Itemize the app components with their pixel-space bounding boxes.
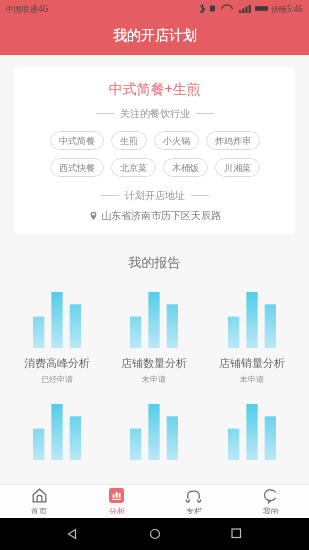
button[interactable]: 小火锅 bbox=[154, 131, 199, 150]
staticText: 我的报告 bbox=[0, 254, 309, 270]
button[interactable] bbox=[33, 404, 81, 460]
staticText: 生煎 bbox=[120, 135, 138, 146]
button[interactable]: Recents bbox=[226, 523, 248, 545]
button[interactable]: 消费高峰分析 bbox=[8, 292, 105, 384]
staticText: 中式简餐+生煎 bbox=[108, 79, 201, 98]
staticText: 中国联通4G bbox=[6, 3, 49, 14]
button[interactable]: 分析 bbox=[78, 484, 155, 518]
button[interactable]: 中式简餐 bbox=[50, 131, 104, 150]
staticText: 店铺数量分析 bbox=[121, 356, 187, 370]
button[interactable]: Back bbox=[61, 523, 83, 545]
button[interactable]: Home bbox=[144, 523, 166, 545]
staticText: 西式快餐 bbox=[59, 162, 95, 173]
button[interactable]: 川湘菜 bbox=[215, 158, 260, 177]
button[interactable]: 首页 bbox=[0, 484, 78, 518]
staticText: 我的开店计划 bbox=[113, 27, 197, 45]
button[interactable]: 西式快餐 bbox=[50, 158, 104, 177]
staticText: 小火锅 bbox=[163, 135, 190, 146]
staticText: 未申请 bbox=[142, 374, 166, 384]
other: 首页 bbox=[32, 488, 47, 503]
button[interactable]: 店铺数量分析 bbox=[105, 292, 203, 384]
staticText: 首页 bbox=[31, 506, 47, 514]
staticText: 川湘菜 bbox=[224, 162, 251, 173]
button[interactable] bbox=[228, 404, 276, 460]
button[interactable]: 生煎 bbox=[111, 131, 147, 150]
other: 我的 bbox=[263, 488, 278, 503]
button[interactable]: 北京菜 bbox=[111, 158, 156, 177]
button[interactable]: 木桶饭 bbox=[163, 158, 208, 177]
staticText: 已经申请 bbox=[41, 374, 73, 384]
staticText: 分析 bbox=[109, 506, 125, 514]
button[interactable]: 中式简餐+生煎 bbox=[14, 67, 295, 234]
button[interactable] bbox=[130, 404, 178, 460]
staticText: 傍晚5:46 bbox=[271, 3, 303, 14]
staticText: 北京菜 bbox=[120, 162, 147, 173]
staticText: 我的 bbox=[263, 506, 279, 514]
staticText: 店铺销量分析 bbox=[219, 356, 285, 370]
staticText: 计划开店地址 bbox=[125, 189, 185, 202]
staticText: 木桶饭 bbox=[172, 162, 199, 173]
staticText: 中式简餐 bbox=[59, 135, 95, 146]
staticText: 专栏 bbox=[186, 506, 202, 514]
other: 专栏 bbox=[186, 488, 201, 503]
staticText: 消费高峰分析 bbox=[24, 356, 90, 370]
staticText: 炸鸡炸串 bbox=[215, 135, 251, 146]
staticText: 山东省济南市历下区天辰路 bbox=[101, 209, 221, 222]
staticText: 未申请 bbox=[240, 374, 264, 384]
button[interactable]: 炸鸡炸串 bbox=[206, 131, 260, 150]
other: 分析 bbox=[109, 488, 124, 503]
button[interactable]: 专栏 bbox=[155, 484, 232, 518]
staticText: 关注的餐饮行业 bbox=[120, 107, 190, 120]
button[interactable]: 我的 bbox=[232, 484, 309, 518]
button[interactable]: 店铺销量分析 bbox=[203, 292, 301, 384]
